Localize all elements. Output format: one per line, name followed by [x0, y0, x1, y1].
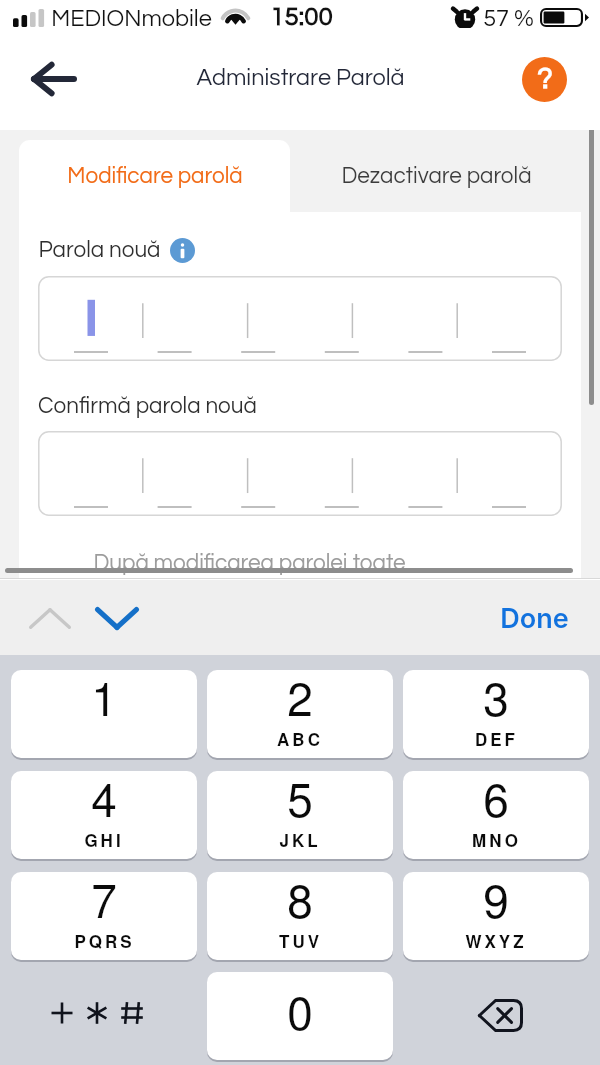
button[interactable]: 0	[207, 972, 393, 1060]
staticText: Done	[500, 602, 569, 635]
staticText: 1	[91, 670, 117, 729]
button[interactable]: 5	[207, 771, 393, 859]
button[interactable]: Backspace	[403, 972, 589, 1060]
staticText: 0	[287, 977, 313, 1043]
button[interactable]: 9	[403, 872, 589, 960]
staticText: Modificare parolă	[67, 165, 243, 188]
staticText: Confirmă parola nouă	[38, 395, 257, 418]
button[interactable]: 2	[207, 670, 393, 758]
button[interactable]: 4	[11, 771, 197, 859]
button[interactable]: Help	[522, 57, 567, 102]
button[interactable]: Done	[486, 592, 582, 644]
staticText: JKL	[279, 828, 321, 852]
staticText: ABC	[277, 727, 323, 751]
staticText: 3	[483, 670, 509, 729]
button[interactable]: 8	[207, 872, 393, 960]
staticText: 5	[287, 771, 313, 830]
staticText: Parola nouă	[38, 239, 161, 262]
staticText: MNO	[472, 828, 521, 852]
staticText: 4	[91, 771, 117, 830]
button[interactable]: Previous field	[14, 590, 86, 646]
button[interactable]: 7	[11, 872, 197, 960]
staticText: TUV	[279, 929, 322, 953]
staticText: 8	[287, 872, 313, 931]
staticText: 57 %	[483, 7, 534, 31]
staticText: ?	[537, 63, 553, 94]
staticText: Administrare Parolă	[196, 66, 405, 90]
staticText: După modificarea parolei toate	[93, 552, 406, 575]
button[interactable]: 6	[403, 771, 589, 859]
button[interactable]: Modificare parolă	[19, 140, 290, 212]
button[interactable]: 3	[403, 670, 589, 758]
staticText: Dezactivare parolă	[341, 165, 532, 188]
button[interactable]: Back	[22, 47, 86, 111]
staticText: 6	[483, 771, 509, 830]
staticText: 2	[287, 670, 313, 729]
staticText: 9	[483, 872, 509, 931]
button[interactable]: 1	[11, 670, 197, 758]
staticText: 15:00	[270, 4, 333, 31]
staticText: DEF	[475, 727, 518, 751]
staticText: WXYZ	[465, 929, 527, 953]
staticText: GHI	[84, 828, 124, 852]
staticText: PQRS	[74, 929, 135, 953]
button[interactable]: Next field	[81, 590, 153, 646]
staticText: MEDIONmobile	[51, 7, 212, 31]
staticText: 7	[91, 872, 117, 931]
button[interactable]: Dezactivare parolă	[290, 140, 581, 212]
button[interactable]: Symbols	[11, 972, 197, 1060]
